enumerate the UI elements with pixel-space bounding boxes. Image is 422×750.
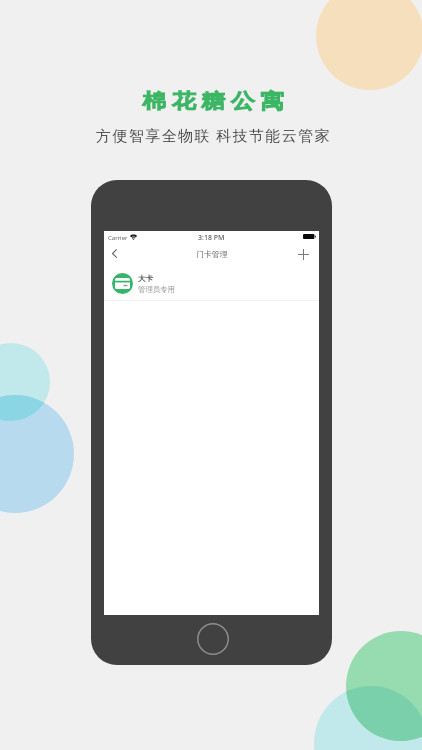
staticText: 3:18 PM: [198, 233, 225, 243]
staticText: 大卡: [138, 274, 154, 284]
button[interactable]: 大卡: [104, 262, 319, 301]
staticText: 管理员专用: [138, 285, 175, 294]
button[interactable]: Add card: [295, 246, 311, 262]
staticText: Carrier: [108, 234, 128, 242]
button[interactable]: Back: [106, 245, 122, 261]
staticText: 方便智享全物联 科技节能云管家: [96, 125, 331, 145]
staticText: 棉花糖公寓: [142, 88, 290, 114]
staticText: 门卡管理: [196, 249, 228, 259]
